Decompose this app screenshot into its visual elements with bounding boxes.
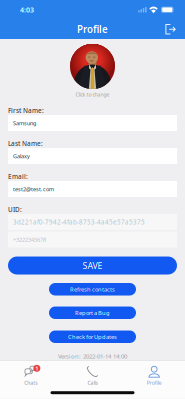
button[interactable]: SAVE — [8, 256, 177, 274]
button[interactable]: Calls — [62, 361, 123, 387]
button[interactable]: Report a Bug — [49, 306, 136, 319]
staticText: 3d221af0-7942-4fab-8753-4a45e57a5375 — [13, 218, 145, 226]
staticText: Refresh contacts — [70, 285, 115, 293]
staticText: SAVE — [82, 259, 102, 271]
staticText: 4:03 — [20, 5, 34, 14]
staticText: Profile — [147, 379, 162, 386]
button[interactable]: Refresh contacts — [49, 283, 136, 295]
staticText: Check for Updates — [68, 333, 117, 341]
staticText: Last Name: — [8, 139, 43, 148]
button[interactable]: Log out — [161, 21, 180, 38]
staticText: Galaxy — [13, 152, 30, 160]
staticText: Samsung — [13, 119, 36, 127]
button[interactable]: Check for Updates — [49, 330, 136, 343]
button[interactable]: 1 — [0, 361, 62, 387]
staticText: Profile — [77, 23, 108, 36]
button[interactable]: Click to change — [70, 44, 115, 100]
staticText: Chats — [24, 379, 37, 386]
staticText: First Name: — [8, 106, 44, 115]
staticText: Version: 2022-01-14 14:00 — [58, 352, 127, 360]
staticText: Click to change — [75, 91, 109, 98]
staticText: +3222345678 — [13, 236, 46, 243]
staticText: UID: — [8, 205, 22, 214]
staticText: Email: — [8, 172, 28, 181]
staticText: 1 — [35, 364, 38, 372]
staticText: test2@test.com — [13, 185, 54, 193]
staticText: Report a Bug — [75, 309, 110, 317]
button[interactable]: Profile — [123, 361, 185, 387]
staticText: Calls — [87, 379, 97, 386]
